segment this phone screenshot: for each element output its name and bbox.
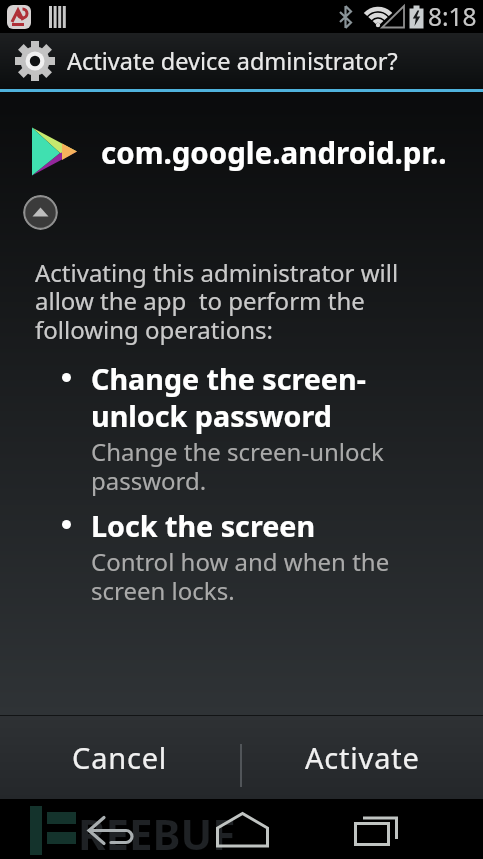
staticText: Activate device administrator? bbox=[67, 45, 398, 77]
button[interactable] bbox=[23, 195, 58, 230]
button[interactable] bbox=[213, 807, 271, 853]
button[interactable] bbox=[76, 809, 134, 853]
button[interactable]: Activate bbox=[242, 716, 483, 799]
staticText: Cancel bbox=[72, 738, 168, 777]
staticText: Change the screen-unlock password. bbox=[91, 435, 384, 497]
staticText: 8:18 bbox=[428, 0, 477, 33]
staticText: Activating this administrator will allow… bbox=[35, 256, 399, 346]
staticText: Control how and when the screen locks. bbox=[91, 545, 390, 607]
staticText: Lock the screen bbox=[91, 506, 316, 545]
button[interactable]: Cancel bbox=[0, 716, 240, 799]
staticText: Activate bbox=[305, 738, 420, 777]
staticText: com.google.android.pr.. bbox=[101, 132, 447, 172]
staticText: REEBUF bbox=[78, 805, 236, 859]
staticText: Change the screen- unlock password bbox=[91, 359, 366, 435]
button[interactable] bbox=[350, 809, 402, 853]
